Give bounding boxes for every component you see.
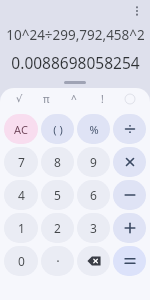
- button[interactable]: Plus: [113, 213, 146, 243]
- button[interactable]: 3: [77, 213, 110, 243]
- button[interactable]: 7: [4, 147, 38, 177]
- button[interactable]: !: [88, 88, 116, 110]
- button[interactable]: [64, 81, 86, 84]
- button[interactable]: 2: [41, 213, 74, 243]
- button[interactable]: π: [33, 88, 60, 110]
- button[interactable]: 0: [4, 246, 38, 276]
- button[interactable]: 5: [41, 180, 74, 210]
- button[interactable]: √: [6, 88, 33, 110]
- staticText: 10^24÷299,792,458^2: [6, 26, 145, 44]
- staticText: 7: [18, 154, 25, 170]
- button[interactable]: More options: [128, 2, 146, 20]
- button[interactable]: ^: [60, 88, 88, 110]
- staticText: ( ): [53, 122, 63, 137]
- button[interactable]: ·: [41, 246, 74, 276]
- button[interactable]: 6: [77, 180, 110, 210]
- staticText: 9: [90, 154, 97, 170]
- button[interactable]: 4: [4, 180, 38, 210]
- button[interactable]: More functions: [116, 88, 144, 110]
- staticText: 6: [90, 187, 97, 203]
- staticText: 3: [90, 220, 97, 236]
- staticText: 4: [18, 187, 25, 203]
- button[interactable]: Multiply: [113, 147, 146, 177]
- button[interactable]: 8: [41, 147, 74, 177]
- button[interactable]: 9: [77, 147, 110, 177]
- button[interactable]: Divide: [113, 114, 146, 144]
- staticText: ^: [71, 92, 77, 106]
- staticText: √: [16, 93, 23, 105]
- staticText: π: [43, 92, 50, 106]
- button[interactable]: %: [77, 114, 110, 144]
- button[interactable]: 1: [4, 213, 38, 243]
- staticText: 5: [54, 187, 61, 203]
- staticText: !: [101, 92, 104, 106]
- staticText: 0.0088698058254: [11, 52, 140, 73]
- staticText: 2: [54, 220, 61, 236]
- button[interactable]: Equals: [113, 246, 146, 276]
- button[interactable]: Backspace: [77, 246, 110, 276]
- staticText: 1: [18, 220, 25, 236]
- staticText: 0: [18, 253, 25, 269]
- button[interactable]: AC: [4, 114, 38, 144]
- staticText: 8: [54, 154, 61, 170]
- staticText: ·: [56, 252, 60, 270]
- button[interactable]: ( ): [41, 114, 74, 144]
- staticText: %: [89, 122, 99, 137]
- button[interactable]: Minus: [113, 180, 146, 210]
- staticText: AC: [14, 122, 28, 137]
